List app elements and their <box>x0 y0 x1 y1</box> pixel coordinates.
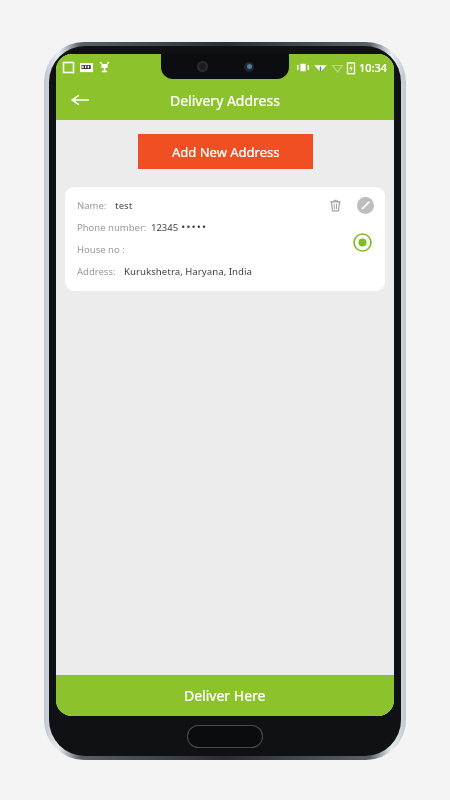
button[interactable]: Delete <box>325 195 345 215</box>
staticText: Delivery Address <box>170 91 280 110</box>
button[interactable]: Deliver Here <box>56 675 394 716</box>
staticText: test <box>115 199 133 212</box>
staticText: Phone number: <box>77 221 147 234</box>
staticText: 12345 <box>151 221 179 234</box>
button[interactable]: Home <box>188 726 262 747</box>
staticText: 10:34 <box>359 60 388 75</box>
staticText: Address: <box>77 265 116 278</box>
button[interactable]: Edit <box>355 195 375 215</box>
staticText: House no : <box>77 243 125 256</box>
button[interactable]: Name: <box>65 187 385 291</box>
staticText: Kurukshetra, Haryana, India <box>124 265 252 278</box>
staticText: Deliver Here <box>184 686 266 705</box>
staticText: Name: <box>77 199 107 212</box>
button[interactable]: Back <box>62 82 98 118</box>
staticText: Add New Address <box>172 143 280 161</box>
button[interactable]: Add New Address <box>138 134 313 169</box>
button[interactable]: Select address <box>351 231 373 253</box>
